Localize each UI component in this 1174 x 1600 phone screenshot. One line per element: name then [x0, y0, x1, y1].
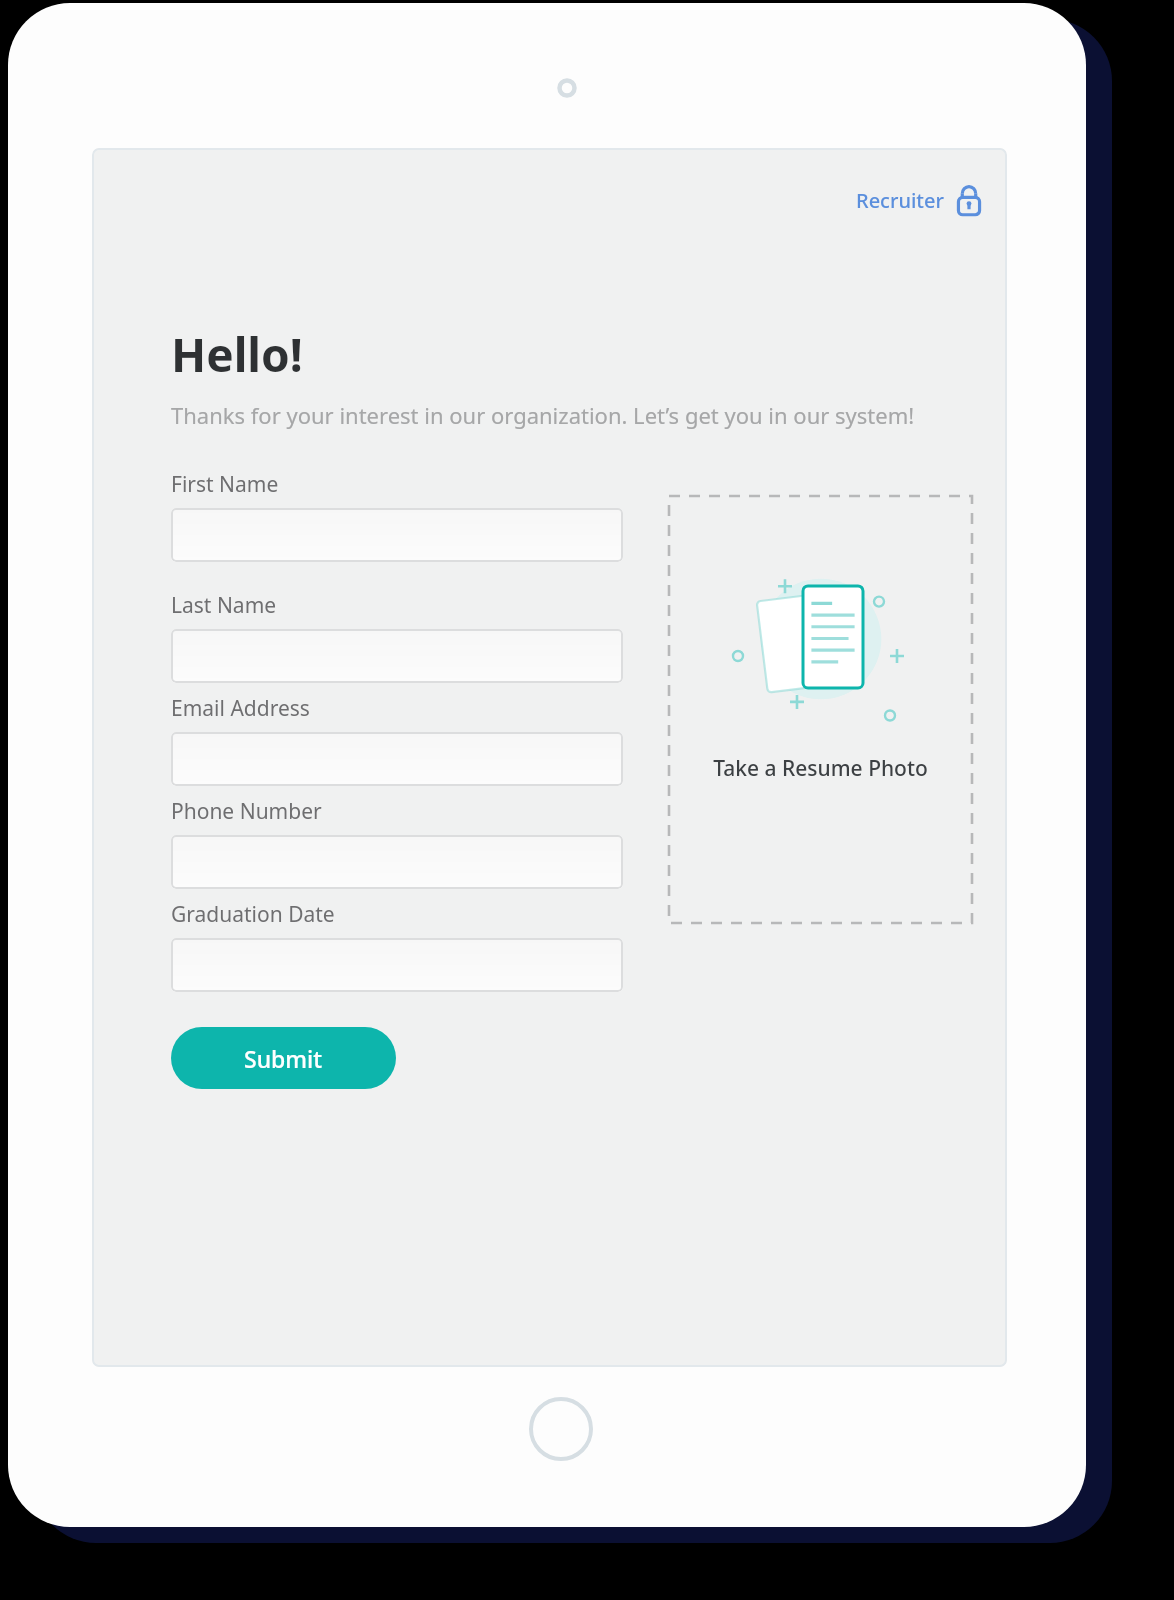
staticText: Thanks for your interest in our organiza…: [171, 400, 915, 430]
staticText: Take a Resume Photo: [713, 754, 928, 783]
button[interactable]: Email Address: [171, 694, 623, 786]
button[interactable]: Phone Number: [171, 797, 623, 889]
staticText: Submit: [244, 1043, 323, 1074]
staticText: Hello!: [171, 323, 303, 386]
staticText: Email Address: [171, 694, 310, 723]
button[interactable]: Recruiter: [850, 181, 987, 220]
button[interactable]: Graduation Date: [171, 900, 623, 992]
button[interactable]: First Name: [171, 470, 623, 562]
staticText: Graduation Date: [171, 900, 335, 929]
button[interactable]: Last Name: [171, 591, 623, 683]
button[interactable]: Submit: [171, 1027, 396, 1089]
staticText: First Name: [171, 470, 279, 499]
staticText: Phone Number: [171, 797, 322, 826]
staticText: Recruiter: [856, 187, 944, 214]
button[interactable]: Take a Resume Photo: [669, 496, 972, 923]
staticText: Last Name: [171, 591, 277, 620]
